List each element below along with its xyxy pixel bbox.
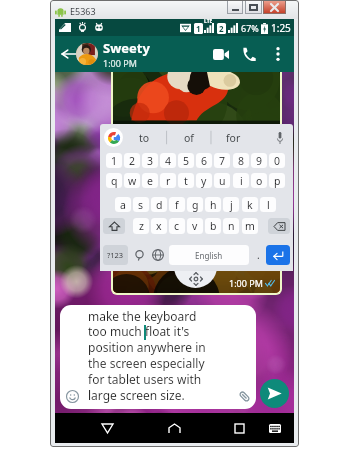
button[interactable]: of: [168, 124, 210, 151]
button[interactable]: o: [251, 173, 267, 188]
button[interactable]: Sweety: [103, 39, 150, 69]
button[interactable]: e: [142, 173, 158, 188]
button[interactable]: More options: [267, 43, 289, 65]
button[interactable]: Minimize: [227, 0, 243, 14]
staticText: 3: [147, 154, 154, 168]
button[interactable]: Keyboard: [262, 415, 288, 441]
button[interactable]: Backspace: [268, 218, 290, 234]
button[interactable]: c: [169, 218, 185, 234]
button[interactable]: r: [160, 173, 176, 188]
button[interactable]: 3: [142, 153, 158, 168]
button[interactable]: m: [242, 218, 258, 234]
button[interactable]: z: [133, 218, 149, 234]
button[interactable]: ?123: [103, 245, 128, 265]
button[interactable]: 5: [178, 153, 194, 168]
button[interactable]: i: [233, 173, 249, 188]
button[interactable]: t: [178, 173, 194, 188]
button[interactable]: Shift: [103, 218, 125, 234]
button[interactable]: l: [260, 197, 276, 212]
staticText: d: [156, 198, 163, 212]
button[interactable]: make the keyboard too much float it's po…: [60, 305, 256, 409]
button[interactable]: 9: [251, 153, 267, 168]
button[interactable]: u: [214, 173, 230, 188]
staticText: f: [175, 198, 179, 212]
staticText: i: [240, 174, 243, 188]
button[interactable]: .: [251, 245, 265, 265]
button[interactable]: d: [151, 197, 167, 212]
button[interactable]: j: [223, 197, 239, 212]
button[interactable]: Close: [263, 0, 286, 14]
staticText: l: [267, 198, 270, 212]
button[interactable]: Profile photo: [76, 43, 98, 65]
staticText: c: [174, 219, 180, 233]
button[interactable]: Home: [161, 415, 187, 441]
button[interactable]: w: [124, 173, 140, 188]
staticText: n: [228, 219, 235, 233]
button[interactable]: to: [123, 124, 165, 151]
button[interactable]: Google: [104, 128, 123, 147]
button[interactable]: 1: [106, 153, 122, 168]
staticText: 2: [129, 154, 136, 168]
button[interactable]: 1:00 PM: [113, 72, 280, 293]
staticText: 8: [238, 154, 245, 168]
staticText: 0: [274, 154, 281, 168]
button[interactable]: f: [169, 197, 185, 212]
staticText: 1: [111, 154, 118, 168]
button[interactable]: q: [106, 173, 122, 188]
button[interactable]: Send: [260, 379, 289, 408]
staticText: 9: [256, 154, 263, 168]
button[interactable]: Video call: [208, 41, 234, 67]
button[interactable]: Back: [94, 415, 120, 441]
button[interactable]: n: [223, 218, 239, 234]
staticText: 1:00 PM: [229, 277, 263, 289]
staticText: 4: [165, 154, 172, 168]
staticText: Sweety: [103, 39, 150, 57]
button[interactable]: s: [133, 197, 149, 212]
button[interactable]: Language: [149, 245, 167, 265]
button[interactable]: Recents: [226, 415, 252, 441]
button[interactable]: y: [196, 173, 212, 188]
staticText: r: [166, 174, 171, 188]
button[interactable]: g: [187, 197, 203, 212]
button[interactable]: k: [242, 197, 258, 212]
button[interactable]: for: [212, 124, 254, 151]
button[interactable]: 7: [214, 153, 230, 168]
staticText: a: [120, 198, 126, 212]
button[interactable]: h: [205, 197, 221, 212]
button[interactable]: p: [269, 173, 285, 188]
button[interactable]: 4: [160, 153, 176, 168]
staticText: for: [226, 131, 241, 145]
staticText: 1: [196, 23, 201, 34]
staticText: x: [156, 219, 162, 233]
button[interactable]: English: [169, 245, 249, 265]
button[interactable]: 2: [124, 153, 140, 168]
staticText: h: [210, 198, 217, 212]
button[interactable]: x: [151, 218, 167, 234]
staticText: LTE: [204, 18, 213, 25]
button[interactable]: a: [115, 197, 131, 212]
button[interactable]: Restore: [245, 0, 262, 14]
staticText: make the keyboard too much float it's po…: [88, 308, 206, 404]
button[interactable]: Voice input: [271, 129, 289, 147]
button[interactable]: Move keyboard: [174, 253, 217, 288]
button[interactable]: 8: [233, 153, 249, 168]
staticText: 1:00 PM: [103, 57, 137, 69]
staticText: o: [256, 174, 263, 188]
button[interactable]: 6: [196, 153, 212, 168]
staticText: to: [139, 131, 150, 145]
staticText: English: [195, 250, 223, 261]
staticText: w: [128, 174, 137, 188]
button[interactable]: Attach: [235, 387, 253, 405]
staticText: k: [247, 198, 253, 212]
button[interactable]: Emoji: [63, 387, 81, 405]
staticText: q: [111, 174, 118, 188]
button[interactable]: Enter: [266, 245, 290, 265]
button[interactable]: Emoji: [131, 245, 147, 265]
button[interactable]: 0: [269, 153, 285, 168]
button[interactable]: b: [205, 218, 221, 234]
button[interactable]: Back: [56, 42, 80, 66]
button[interactable]: Voice call: [236, 41, 262, 67]
staticText: p: [274, 174, 281, 188]
staticText: s: [138, 198, 144, 212]
button[interactable]: v: [187, 218, 203, 234]
